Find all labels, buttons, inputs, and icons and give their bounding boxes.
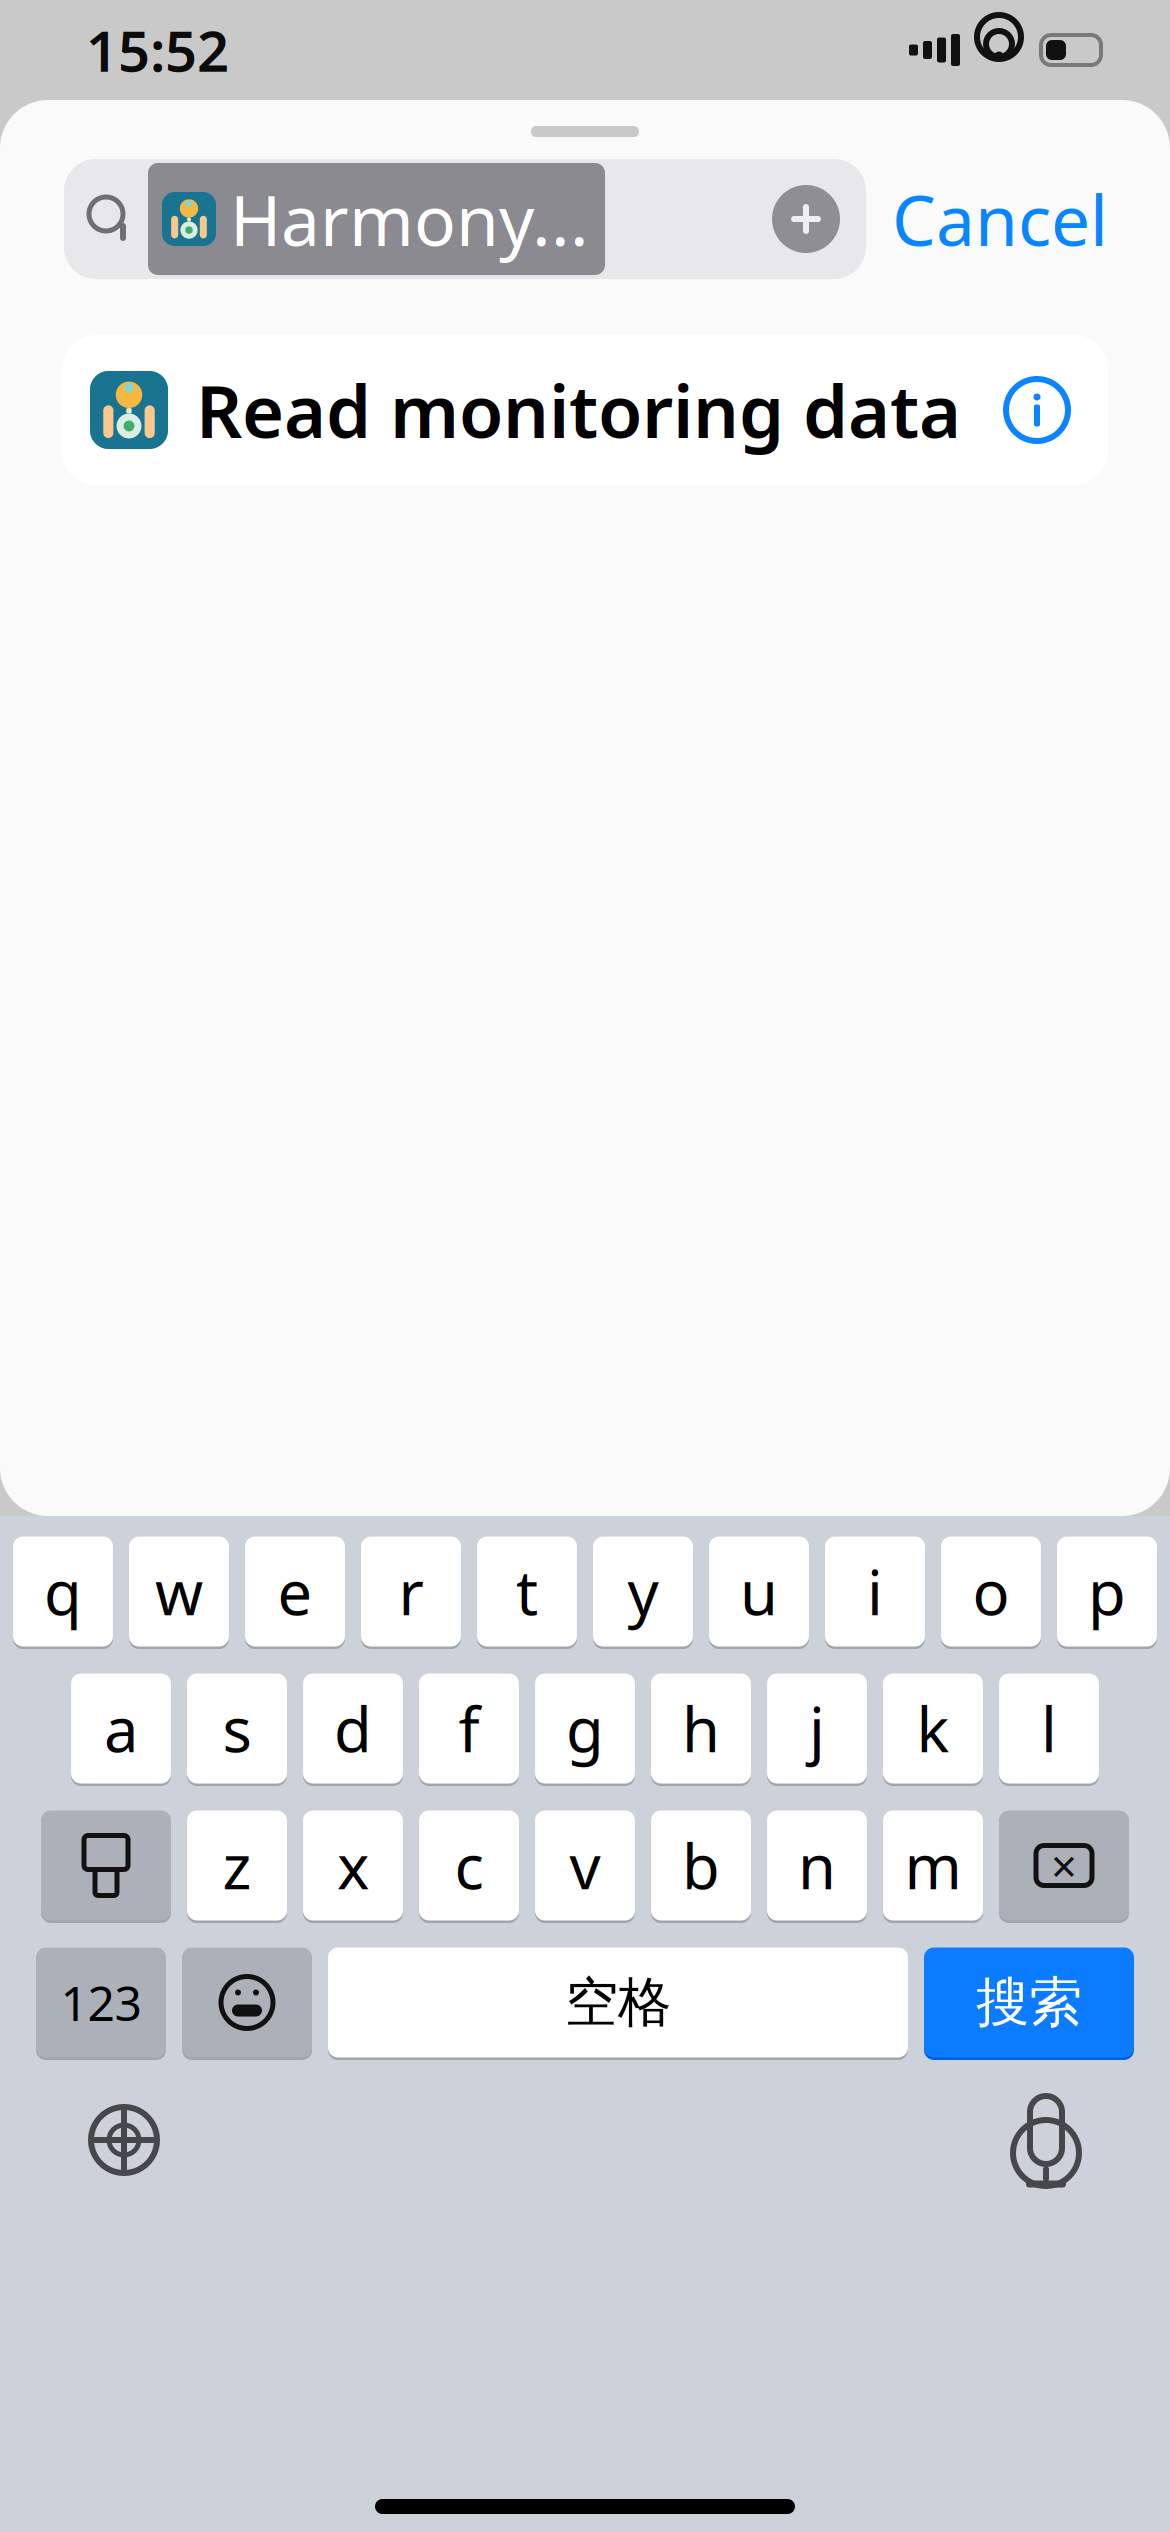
button[interactable]: r [361, 1534, 461, 1649]
staticText: o [972, 1551, 1009, 1632]
button[interactable]: Dictation [1000, 2090, 1092, 2190]
button[interactable]: d [303, 1671, 403, 1786]
button[interactable]: o [941, 1534, 1041, 1649]
staticText: 空格 [565, 1970, 671, 2035]
button[interactable]: e [245, 1534, 345, 1649]
button[interactable]: Next keyboard [78, 2094, 170, 2186]
staticText: j [809, 1688, 825, 1769]
staticText: l [1041, 1688, 1057, 1769]
staticText: n [798, 1825, 836, 1906]
button[interactable]: c [419, 1808, 519, 1923]
button[interactable]: a [71, 1671, 171, 1786]
staticText: 123 [60, 1971, 141, 2034]
staticText: i [867, 1551, 883, 1632]
button[interactable]: m [883, 1808, 983, 1923]
button[interactable]: j [767, 1671, 867, 1786]
staticText: f [458, 1688, 479, 1769]
button[interactable]: g [535, 1671, 635, 1786]
staticText: z [222, 1825, 251, 1906]
staticText: s [222, 1688, 251, 1769]
staticText: k [916, 1688, 949, 1769]
button[interactable]: l [999, 1671, 1099, 1786]
staticText: g [566, 1688, 604, 1769]
staticText: p [1088, 1551, 1126, 1632]
button[interactable]: t [477, 1534, 577, 1649]
staticText: 15:52 [86, 13, 229, 87]
button[interactable]: 搜索 [924, 1945, 1134, 2060]
button[interactable]: f [419, 1671, 519, 1786]
staticText: Read monitoring data [196, 362, 961, 458]
staticText: x [337, 1825, 369, 1906]
staticText: b [682, 1825, 720, 1906]
button[interactable]: y [593, 1534, 693, 1649]
button[interactable]: z [187, 1808, 287, 1923]
staticText: h [682, 1688, 720, 1769]
button[interactable]: Delete [999, 1808, 1129, 1923]
button[interactable]: q [13, 1534, 113, 1649]
staticText: u [740, 1551, 778, 1632]
button[interactable]: k [883, 1671, 983, 1786]
staticText: Cancel [892, 173, 1108, 265]
button[interactable]: b [651, 1808, 751, 1923]
staticText: e [277, 1551, 312, 1632]
button[interactable]: Emoji [182, 1945, 312, 2060]
staticText: r [398, 1551, 423, 1632]
staticText: × [1051, 1835, 1077, 1896]
button[interactable]: n [767, 1808, 867, 1923]
button[interactable]: Shift [41, 1808, 171, 1923]
button[interactable]: 空格 [328, 1945, 908, 2060]
staticText: a [104, 1688, 138, 1769]
button[interactable]: x [303, 1808, 403, 1923]
staticText: 搜索 [976, 1970, 1082, 2035]
staticText: m [904, 1825, 961, 1906]
button[interactable]: i [825, 1534, 925, 1649]
button[interactable]: u [709, 1534, 809, 1649]
button[interactable]: Clear text [772, 185, 866, 253]
staticText: d [334, 1688, 372, 1769]
staticText: w [155, 1551, 203, 1632]
button[interactable]: Cancel [866, 159, 1134, 279]
button[interactable]: s [187, 1671, 287, 1786]
staticText: c [454, 1825, 483, 1906]
button[interactable]: Read monitoring data [62, 335, 1108, 485]
staticText: q [44, 1551, 82, 1632]
staticText: Harmony... [230, 173, 589, 265]
button[interactable]: p [1057, 1534, 1157, 1649]
staticText: v [569, 1825, 600, 1906]
button[interactable]: w [129, 1534, 229, 1649]
button[interactable]: h [651, 1671, 751, 1786]
staticText: t [516, 1551, 538, 1632]
button[interactable]: v [535, 1808, 635, 1923]
button[interactable]: 123 [36, 1945, 166, 2060]
staticText: y [627, 1551, 658, 1632]
